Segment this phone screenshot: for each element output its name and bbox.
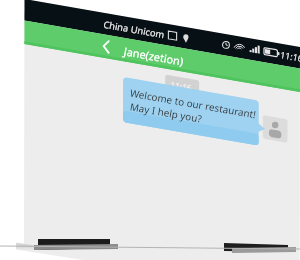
- button[interactable]: Chat conversation with Jane: [0, 0, 300, 260]
